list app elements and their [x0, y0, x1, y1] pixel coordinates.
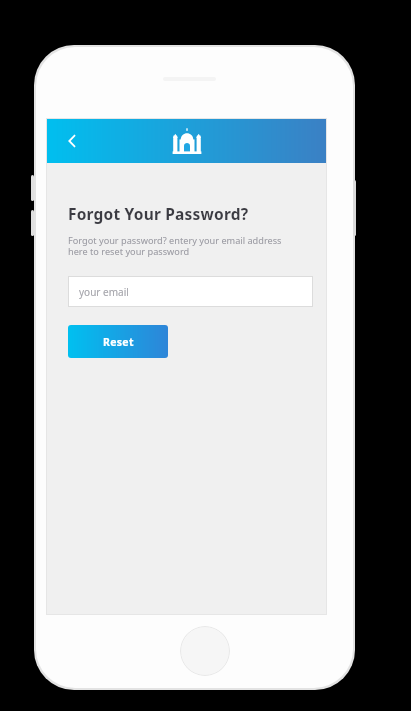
- button[interactable]: Reset: [68, 325, 168, 358]
- button[interactable]: Back: [56, 125, 88, 157]
- button[interactable]: your email: [68, 276, 313, 307]
- staticText: Forgot Your Password?: [68, 203, 249, 224]
- button[interactable]: Home: [180, 626, 230, 676]
- staticText: Reset: [103, 335, 134, 349]
- staticText: Forgot your password? entery your email …: [68, 234, 300, 258]
- staticText: your email: [79, 285, 129, 299]
